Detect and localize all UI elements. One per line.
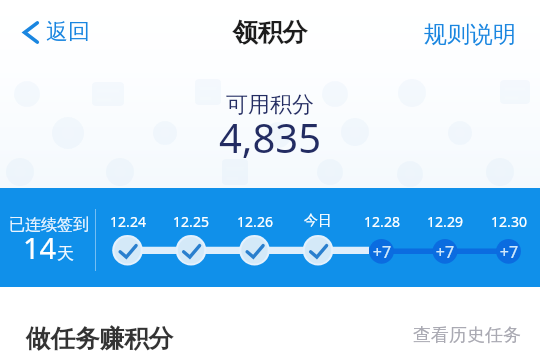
- button[interactable]: 已连续签到: [0, 188, 540, 287]
- staticText: 12.26: [215, 212, 295, 231]
- staticText: 12.28: [342, 212, 422, 231]
- staticText: 今日: [278, 212, 358, 230]
- staticText: 12.24: [88, 212, 168, 231]
- button[interactable]: Back: [15, 13, 100, 51]
- staticText: 可用积分: [170, 91, 370, 119]
- staticText: 做任务赚积分: [26, 323, 173, 354]
- staticText: 规则说明: [424, 20, 516, 49]
- staticText: 12.30: [469, 212, 540, 231]
- staticText: 天: [57, 243, 74, 264]
- staticText: 12.25: [151, 212, 231, 231]
- button[interactable]: 查看历史任务: [403, 313, 531, 358]
- staticText: 已连续签到: [0, 215, 109, 235]
- button[interactable]: 规则说明: [413, 11, 527, 58]
- staticText: 返回: [46, 18, 90, 46]
- staticText: +7: [415, 241, 475, 263]
- staticText: 查看历史任务: [413, 324, 521, 347]
- staticText: 14: [23, 228, 57, 267]
- staticText: 领积分: [170, 17, 370, 48]
- staticText: 4,835: [170, 110, 370, 164]
- staticText: +7: [352, 241, 412, 263]
- staticText: 12.29: [405, 212, 485, 231]
- staticText: +7: [479, 241, 539, 263]
